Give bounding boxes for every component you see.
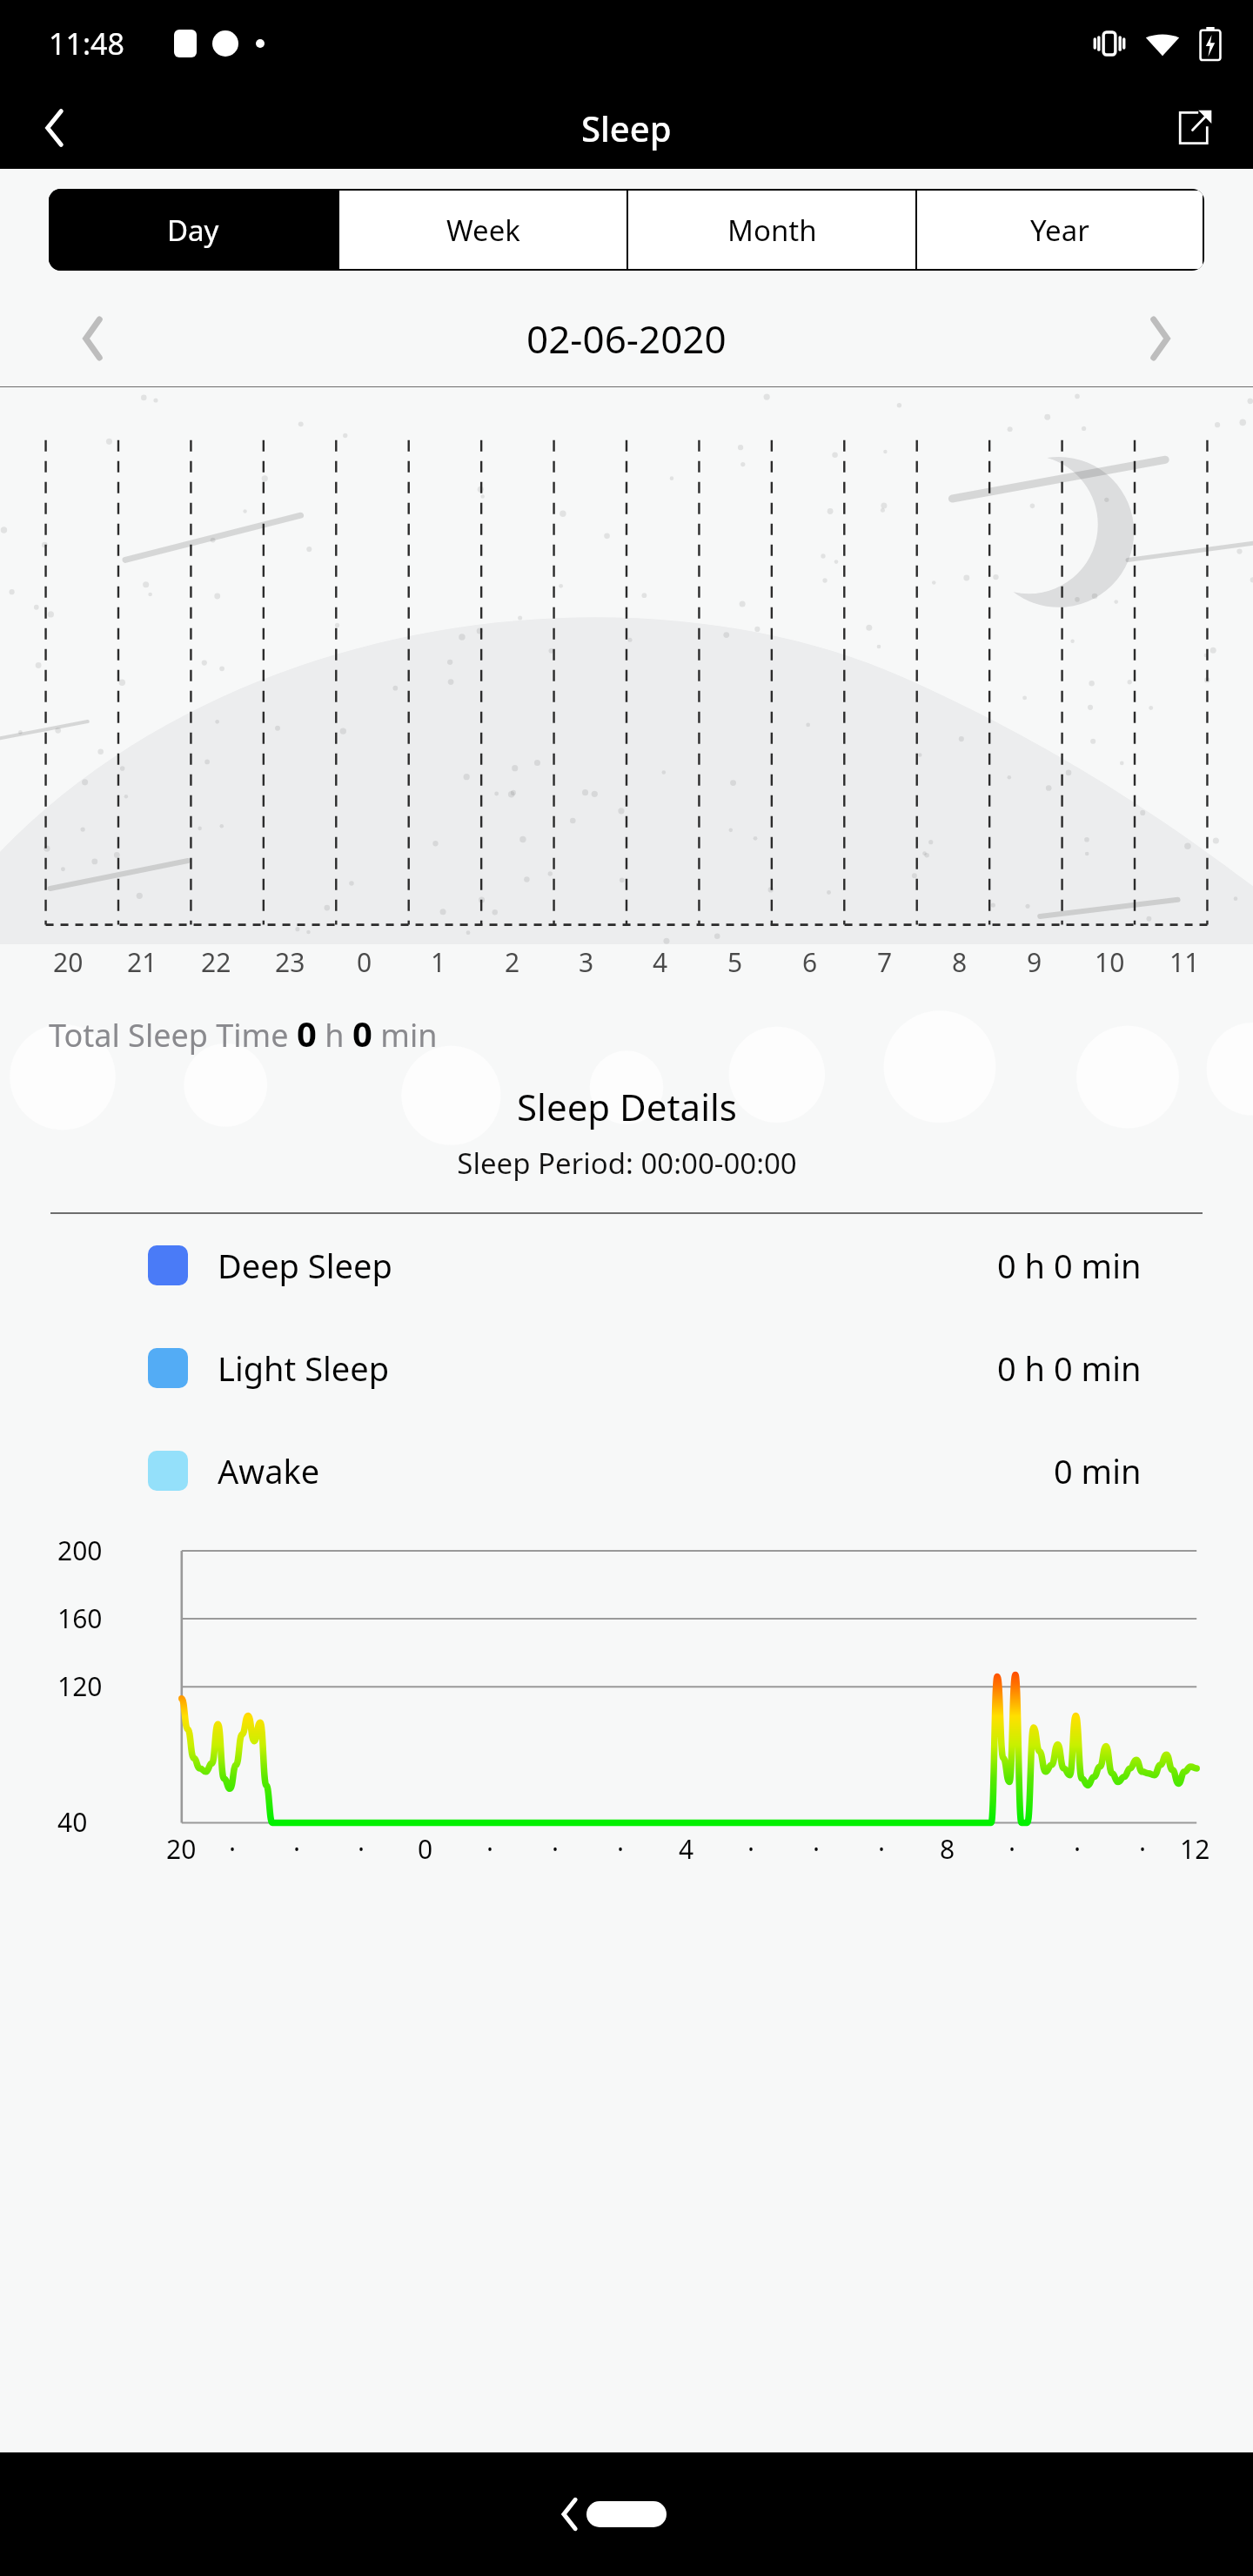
- staticText: ·: [1074, 1831, 1082, 1867]
- staticText: 120: [57, 1668, 103, 1704]
- button[interactable]: Month: [628, 191, 915, 269]
- staticText: Sleep Details: [517, 1082, 737, 1131]
- staticText: 160: [57, 1600, 103, 1636]
- staticText: 11:48: [49, 23, 124, 64]
- staticText: 22: [201, 944, 231, 980]
- staticText: 7: [877, 944, 893, 980]
- staticText: 23: [275, 944, 305, 980]
- staticText: 20: [53, 944, 84, 980]
- staticText: Deep Sleep: [218, 1243, 392, 1288]
- staticText: Year: [1030, 211, 1089, 250]
- button[interactable]: Light Sleep: [0, 1317, 1253, 1419]
- staticText: Month: [727, 211, 817, 250]
- staticText: 0 h 0 min: [997, 1345, 1142, 1391]
- button[interactable]: Share: [1161, 94, 1229, 162]
- staticText: 200: [57, 1533, 103, 1568]
- staticText: 3: [579, 944, 594, 980]
- staticText: ·: [878, 1831, 886, 1867]
- staticText: 8: [940, 1831, 955, 1867]
- button[interactable]: Next day: [1128, 306, 1192, 371]
- staticText: ·: [552, 1831, 559, 1867]
- staticText: ·: [486, 1831, 494, 1867]
- staticText: ·: [293, 1831, 301, 1867]
- staticText: 11: [1169, 944, 1200, 980]
- staticText: Week: [446, 211, 520, 250]
- button[interactable]: Deep Sleep: [0, 1214, 1253, 1317]
- staticText: 0: [418, 1831, 433, 1867]
- staticText: Light Sleep: [218, 1345, 390, 1391]
- staticText: 4: [679, 1831, 694, 1867]
- button[interactable]: Week: [339, 191, 626, 269]
- staticText: h: [317, 1014, 352, 1057]
- staticText: 0 min: [1054, 1448, 1142, 1493]
- staticText: 8: [952, 944, 968, 980]
- staticText: 0: [352, 1010, 372, 1057]
- staticText: Total Sleep Time: [49, 1014, 297, 1057]
- staticText: Sleep Period: 00:00-00:00: [457, 1144, 797, 1183]
- staticText: 21: [127, 944, 157, 980]
- staticText: Day: [167, 211, 219, 250]
- staticText: 6: [802, 944, 818, 980]
- staticText: ·: [1008, 1831, 1016, 1867]
- button[interactable]: Awake: [0, 1419, 1253, 1522]
- button[interactable]: Back: [528, 2472, 612, 2556]
- staticText: 20: [166, 1831, 197, 1867]
- staticText: Sleep: [581, 104, 672, 151]
- staticText: ·: [229, 1831, 237, 1867]
- staticText: 5: [727, 944, 743, 980]
- staticText: 4: [653, 944, 668, 980]
- staticText: 10: [1095, 944, 1125, 980]
- staticText: Awake: [218, 1448, 320, 1493]
- staticText: 0: [357, 944, 372, 980]
- button[interactable]: Previous day: [61, 306, 125, 371]
- staticText: 0: [297, 1010, 317, 1057]
- button[interactable]: Day: [49, 189, 338, 271]
- staticText: 40: [57, 1804, 88, 1840]
- staticText: 2: [505, 944, 520, 980]
- button[interactable]: Home: [557, 2479, 696, 2549]
- staticText: ·: [813, 1831, 821, 1867]
- button[interactable]: Back: [21, 94, 89, 162]
- staticText: 1: [431, 944, 446, 980]
- staticText: ·: [617, 1831, 625, 1867]
- staticText: ·: [747, 1831, 755, 1867]
- staticText: 9: [1027, 944, 1042, 980]
- button[interactable]: Year: [917, 191, 1203, 269]
- staticText: 02-06-2020: [526, 312, 727, 365]
- staticText: ·: [358, 1831, 365, 1867]
- staticText: 12: [1180, 1831, 1210, 1867]
- staticText: min: [372, 1014, 438, 1057]
- staticText: 0 h 0 min: [997, 1243, 1142, 1288]
- staticText: ·: [1139, 1831, 1147, 1867]
